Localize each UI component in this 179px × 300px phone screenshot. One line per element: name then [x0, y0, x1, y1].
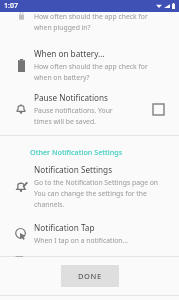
button[interactable]: Notification Tap	[8, 222, 169, 245]
staticText: 1:07	[4, 1, 18, 11]
staticText: Pause notifications. Your scheduled upda…	[34, 106, 147, 115]
staticText: Notification Settings	[34, 164, 113, 175]
staticText: DONE	[78, 271, 102, 281]
staticText: when on battery?	[34, 73, 90, 82]
staticText: Notification Tap	[34, 222, 95, 233]
button[interactable]: DONE	[61, 265, 119, 287]
button[interactable]: Pause Notifications	[8, 92, 169, 126]
staticText: Other Notification Settings	[30, 147, 123, 157]
button[interactable]: When on battery…	[8, 48, 169, 82]
staticText: channels.	[34, 200, 65, 209]
button[interactable]: Pause notifications checkbox	[147, 98, 169, 120]
staticText: You can change the settings for the noti…	[34, 189, 169, 198]
staticText: How often should the app check for notif…	[34, 12, 169, 21]
staticText: When on battery…	[34, 48, 105, 59]
staticText: when plugged in?	[34, 23, 91, 32]
staticText: Pause Notifications	[34, 92, 108, 103]
staticText: times will be saved.	[34, 117, 96, 126]
staticText: How often should the app check for notif…	[34, 62, 169, 71]
staticText: Go to the Notification Settings page on …	[34, 178, 169, 187]
button[interactable]: Notification Settings	[8, 164, 169, 209]
button[interactable]: How often should the app check for notif…	[8, 12, 169, 36]
staticText: When I tap on a notification…	[34, 236, 128, 245]
